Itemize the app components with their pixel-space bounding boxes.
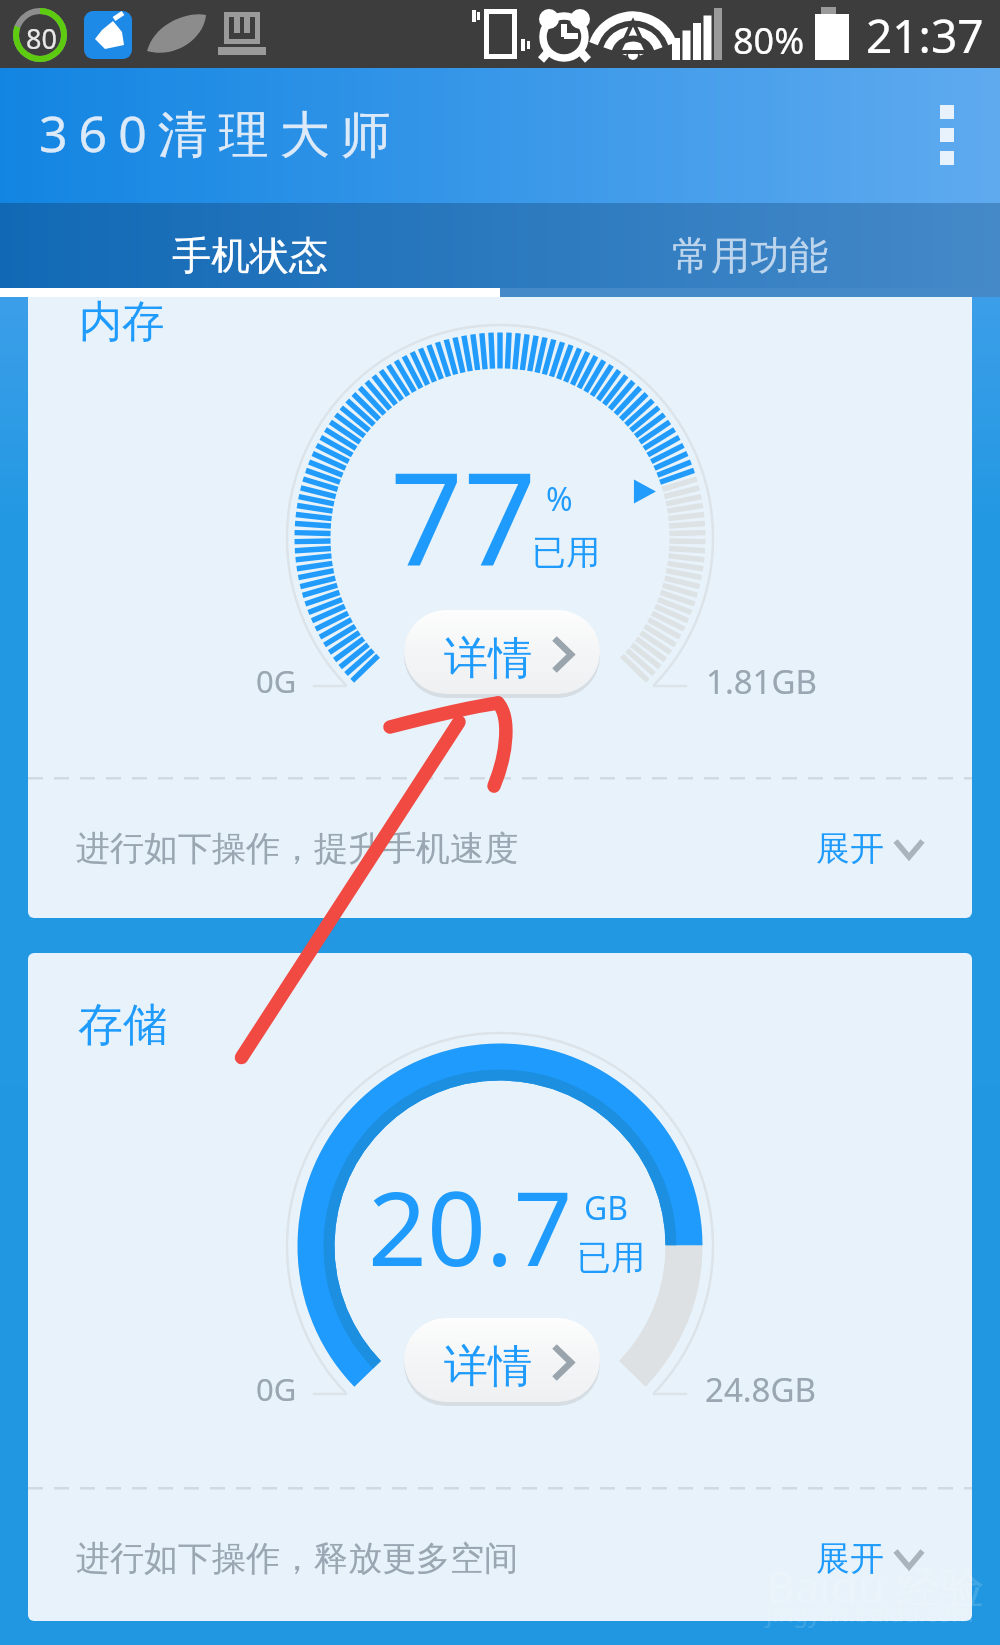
staticText: 77 (390, 428, 537, 602)
button[interactable]: 常用功能 (500, 203, 1000, 288)
button[interactable]: 详情 (404, 1318, 600, 1408)
staticText: 进行如下操作，释放更多空间 (76, 1537, 518, 1580)
staticText: 详情 (444, 631, 532, 686)
staticText: 21:37 (866, 4, 984, 67)
staticText: Baidu 经验 (766, 1556, 985, 1616)
staticText: 1.81GB (706, 659, 817, 704)
button[interactable]: 详情 (404, 610, 600, 700)
staticText: 360清理大师 (39, 99, 402, 167)
staticText: 内存 (79, 297, 165, 349)
staticText: 已用 (577, 1236, 645, 1279)
button[interactable]: 手机状态 (0, 203, 500, 288)
staticText: 展开 (816, 1537, 884, 1580)
staticText: 0G (256, 1368, 297, 1410)
button[interactable]: 展开 (808, 1527, 933, 1590)
staticText: 已用 (532, 531, 600, 574)
staticText: 进行如下操作，提升手机速度 (76, 827, 518, 870)
staticText: 80 (26, 20, 57, 57)
button[interactable]: More options (900, 68, 1000, 203)
staticText: 0G (256, 660, 297, 702)
staticText: 展开 (816, 827, 884, 870)
staticText: 80% (733, 16, 805, 65)
staticText: 20.7 (368, 1156, 573, 1296)
staticText: 详情 (444, 1339, 532, 1394)
staticText: 常用功能 (672, 231, 828, 280)
staticText: 存储 (78, 997, 168, 1054)
staticText: GB (584, 1186, 629, 1230)
button[interactable]: 展开 (808, 817, 933, 880)
staticText: 手机状态 (172, 231, 328, 280)
staticText: jingyan.baidu.com (766, 1596, 974, 1629)
staticText: 24.8GB (705, 1367, 816, 1412)
staticText: % (546, 477, 573, 521)
